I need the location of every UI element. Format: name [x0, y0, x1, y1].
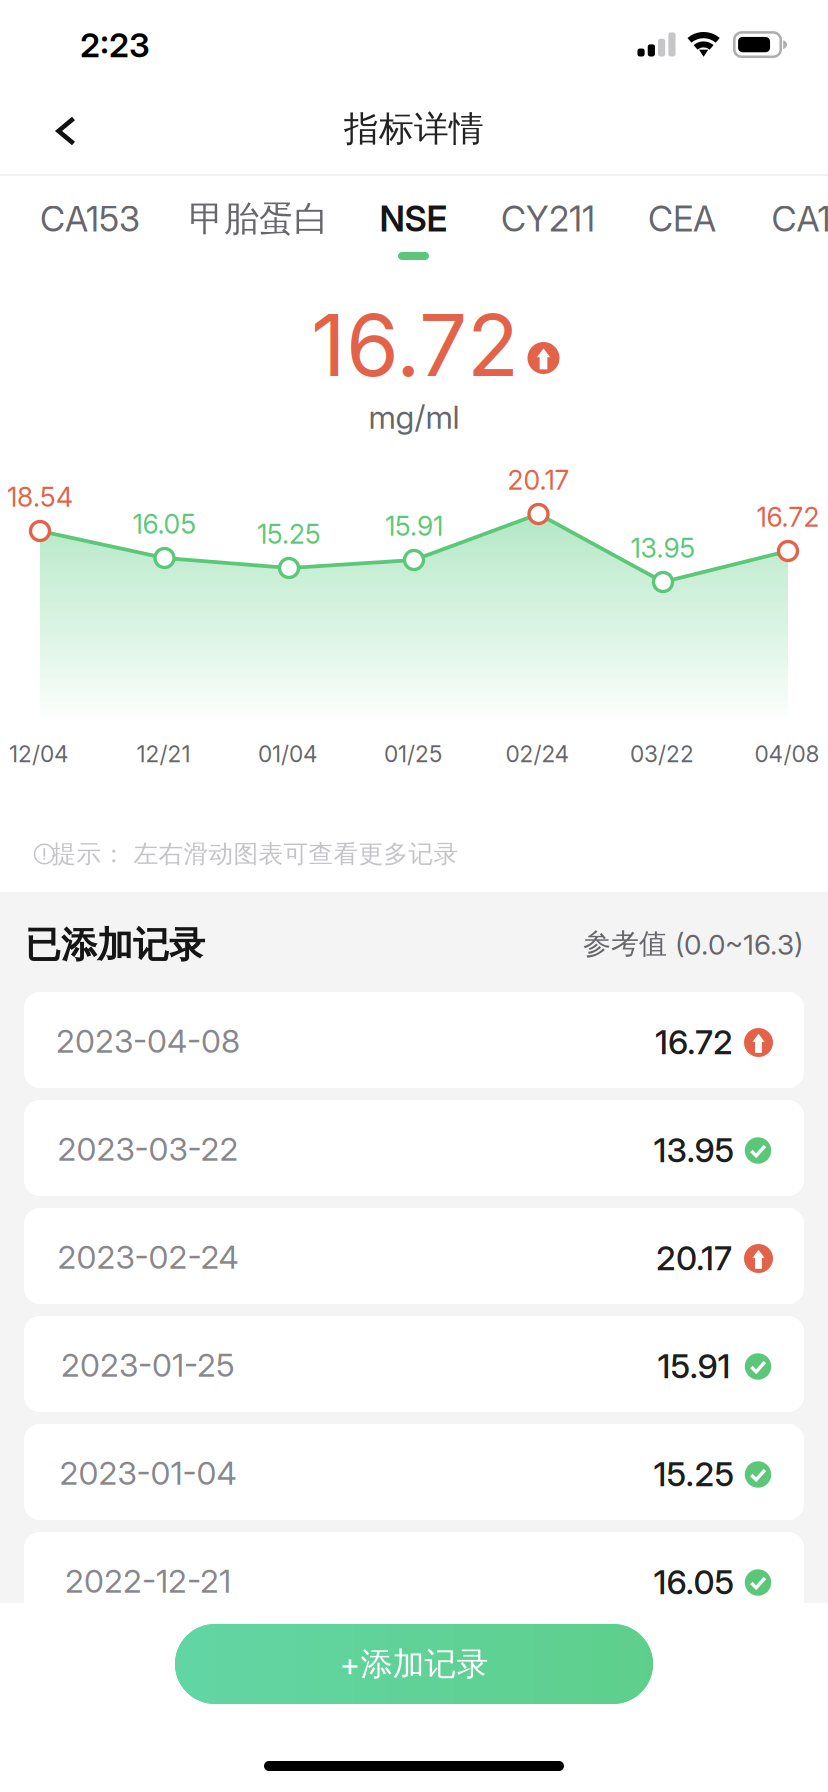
staticText: 指标详情: [344, 107, 484, 151]
button[interactable]: 2023-03-22: [24, 1100, 804, 1196]
staticText: 16.72: [655, 1022, 733, 1062]
staticText: 04/08: [754, 740, 819, 768]
staticText: 2023-01-04: [59, 1454, 236, 1492]
staticText: CA1: [771, 198, 828, 240]
button[interactable]: 甲胎蛋白: [195, 175, 323, 269]
staticText: 2022-12-21: [65, 1562, 231, 1600]
staticText: 15.91: [385, 510, 443, 542]
staticText: 15.25: [257, 518, 321, 550]
button[interactable]: CY211: [484, 175, 612, 269]
staticText: 13.95: [630, 532, 695, 564]
staticText: 12/04: [9, 740, 69, 768]
button[interactable]: 2023-01-25: [24, 1316, 804, 1412]
staticText: CEA: [648, 198, 716, 240]
staticText: +添加记录: [339, 1644, 488, 1684]
staticText: 甲胎蛋白: [189, 197, 329, 241]
staticText: 01/04: [258, 740, 318, 768]
button[interactable]: +添加记录: [175, 1624, 653, 1704]
staticText: 18.54: [7, 481, 73, 513]
staticText: 已添加记录: [25, 922, 205, 968]
button[interactable]: 2023-04-08: [24, 992, 804, 1088]
staticText: 20.17: [656, 1238, 732, 1278]
staticText: 2023-01-25: [61, 1346, 235, 1384]
staticText: 03/22: [630, 740, 694, 768]
staticText: CY211: [501, 198, 595, 240]
button[interactable]: CA153: [26, 175, 154, 269]
staticText: 01/25: [384, 740, 442, 768]
staticText: 12/21: [136, 740, 190, 768]
button[interactable]: CEA: [618, 175, 746, 269]
staticText: 2:23: [80, 25, 150, 65]
staticText: 16.05: [653, 1562, 734, 1602]
staticText: mg/ml: [368, 398, 459, 436]
staticText: 16.72: [311, 293, 519, 397]
staticText: 16.72: [756, 501, 819, 533]
staticText: 16.05: [132, 508, 196, 540]
staticText: 13.95: [653, 1130, 734, 1170]
button[interactable]: 2022-12-21: [24, 1532, 804, 1628]
staticText: NSE: [379, 198, 447, 240]
button[interactable]: NSE: [349, 175, 477, 269]
button[interactable]: CA1: [737, 175, 828, 269]
staticText: 15.91: [657, 1346, 730, 1386]
staticText: 参考值 (0.0~16.3): [583, 926, 803, 962]
button[interactable]: 2023-01-04: [24, 1424, 804, 1520]
staticText: 提示： 左右滑动图表可查看更多记录: [51, 838, 458, 870]
staticText: CA153: [40, 198, 140, 240]
button[interactable]: 2023-02-24: [24, 1208, 804, 1304]
staticText: 2023-02-24: [57, 1238, 238, 1276]
staticText: 2023-03-22: [57, 1130, 238, 1168]
staticText: 15.25: [653, 1454, 734, 1494]
staticText: 20.17: [507, 464, 569, 496]
button[interactable]: Back: [5, 88, 125, 174]
staticText: 02/24: [505, 740, 569, 768]
staticText: 2023-04-08: [56, 1022, 240, 1060]
